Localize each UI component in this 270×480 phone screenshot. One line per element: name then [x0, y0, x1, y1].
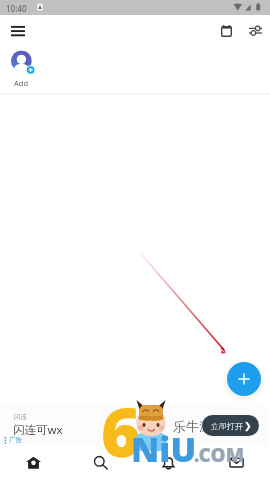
staticText: ❯: [244, 421, 252, 431]
button[interactable]: Calendar: [213, 17, 240, 44]
button[interactable]: Mail: [202, 446, 270, 480]
button[interactable]: Menu: [4, 17, 31, 44]
staticText: 10:40: [6, 3, 27, 14]
button[interactable]: 立即打开: [202, 415, 259, 436]
staticText: 乐牛游戏: [173, 418, 225, 434]
staticText: 闪连: [14, 413, 27, 421]
button[interactable]: Search: [67, 446, 134, 480]
staticText: 闪连可wx: [13, 422, 63, 438]
staticText: 6: [101, 384, 141, 477]
button[interactable]: Filter settings: [242, 17, 269, 44]
button[interactable]: 闪连: [1, 404, 269, 446]
staticText: 立即打开: [211, 421, 243, 431]
staticText: 广告: [9, 436, 22, 444]
button[interactable]: Compose new message: [227, 362, 261, 396]
staticText: .COM: [194, 442, 245, 468]
staticText: NiU: [131, 426, 197, 472]
button[interactable]: Notifications: [134, 446, 202, 480]
button[interactable]: Add: [11, 50, 32, 88]
button[interactable]: Home: [0, 446, 67, 480]
staticText: Add: [14, 78, 29, 88]
